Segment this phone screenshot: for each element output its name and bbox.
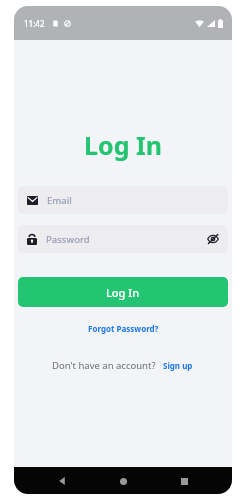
button[interactable]: Password bbox=[18, 225, 228, 253]
staticText: Log In bbox=[16, 128, 230, 162]
staticText: Don't have an account? bbox=[52, 359, 156, 372]
staticText: 11:42 bbox=[24, 18, 45, 29]
staticText: Log In bbox=[106, 285, 140, 300]
button[interactable]: Recent apps bbox=[171, 468, 197, 494]
staticText: Password bbox=[46, 233, 90, 246]
button[interactable]: Sign up bbox=[161, 358, 195, 373]
button[interactable]: Log In bbox=[18, 277, 228, 307]
staticText: Email bbox=[47, 194, 72, 207]
staticText: Forgot Password? bbox=[88, 323, 159, 334]
button[interactable]: Home bbox=[110, 468, 136, 494]
button[interactable]: Show password bbox=[207, 234, 219, 244]
button[interactable]: Forgot Password? bbox=[84, 321, 163, 336]
button[interactable]: Back bbox=[49, 468, 75, 494]
button[interactable]: Email bbox=[18, 186, 228, 214]
staticText: Sign up bbox=[163, 360, 193, 371]
